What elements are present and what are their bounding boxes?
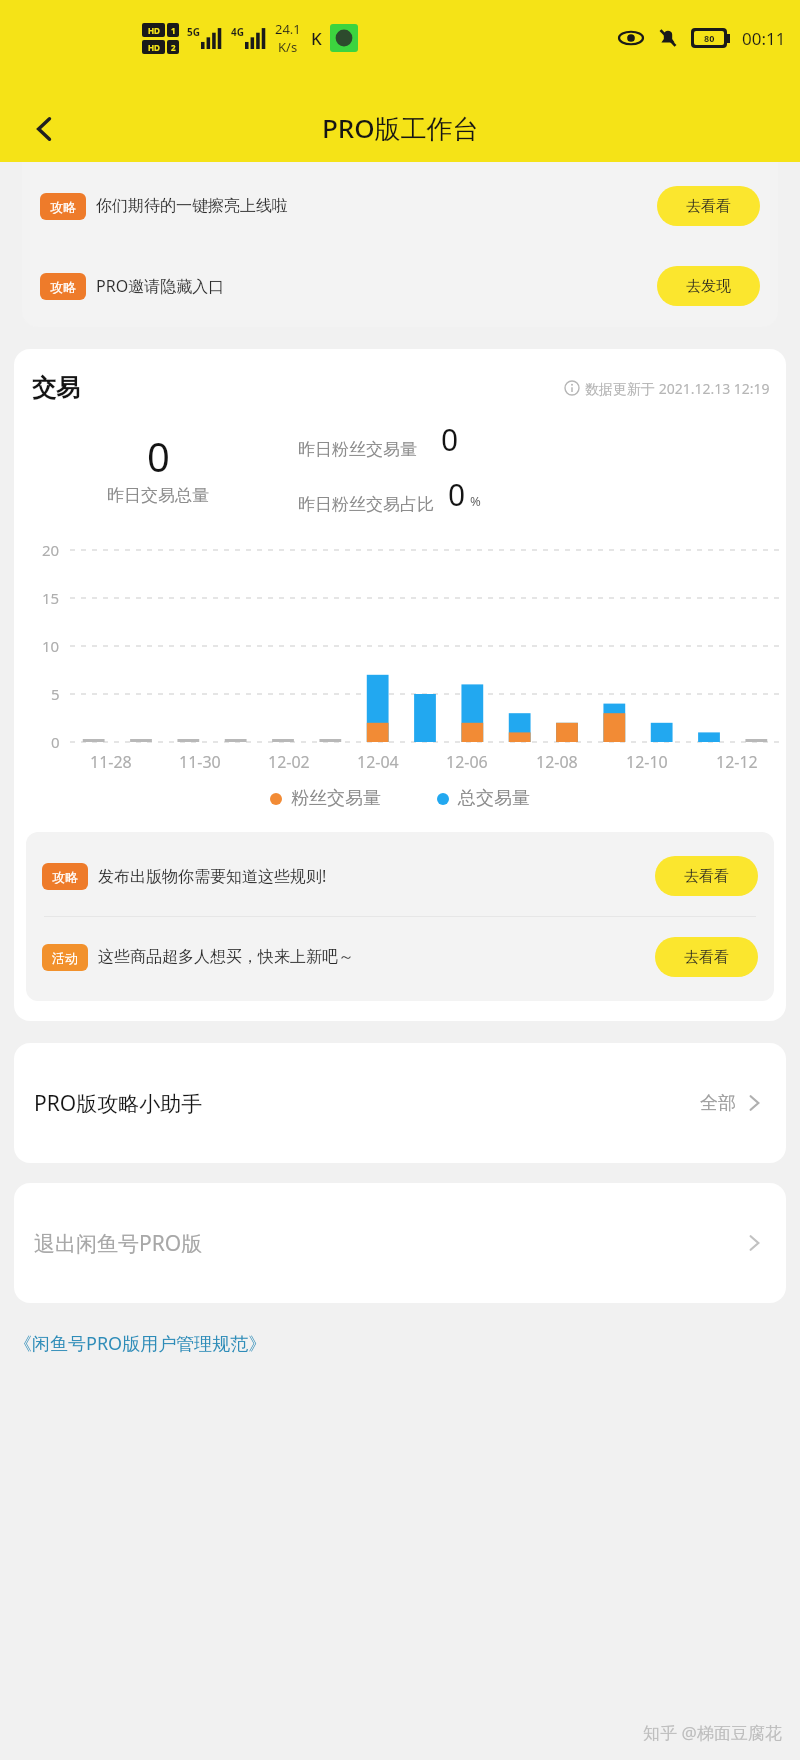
staticText: 11-30 (179, 751, 221, 773)
staticText: 去发现 (686, 277, 731, 296)
staticText: 12-12 (716, 751, 758, 773)
staticText: 12-02 (268, 751, 310, 773)
button[interactable]: 去看看 (655, 937, 758, 977)
button[interactable]: Back (16, 100, 74, 158)
staticText: % (470, 492, 481, 510)
staticText: 24.1 (275, 20, 301, 38)
staticText: 12-08 (536, 751, 578, 773)
button[interactable]: 去看看 (655, 856, 758, 896)
staticText: 去看看 (684, 867, 729, 886)
button[interactable]: 活动 (28, 917, 772, 997)
staticText: 昨日粉丝交易占比 (298, 494, 434, 515)
staticText: 12-06 (446, 751, 488, 773)
button[interactable]: PRO版攻略小助手 (14, 1043, 786, 1163)
other: Eye protection (619, 26, 643, 50)
staticText: 你们期待的一键擦亮上线啦 (96, 196, 657, 216)
staticText: 5 (51, 684, 60, 704)
staticText: 去看看 (686, 197, 731, 216)
staticText: 12-04 (357, 751, 399, 773)
staticText: 5G (187, 25, 200, 39)
staticText: 15 (42, 588, 60, 608)
staticText: 2 (171, 42, 176, 53)
staticText: PRO版工作台 (322, 110, 479, 146)
staticText: 活动 (52, 950, 78, 966)
button[interactable]: 攻略 (26, 166, 774, 246)
staticText: 昨日粉丝交易量 (298, 439, 417, 460)
staticText: 4G (231, 25, 244, 39)
button[interactable]: 攻略 (26, 246, 774, 326)
staticText: HD (148, 42, 160, 53)
staticText: 11-28 (90, 751, 132, 773)
staticText: 知乎 @梯面豆腐花 (643, 1721, 782, 1744)
button[interactable]: 去看看 (657, 186, 760, 226)
staticText: 全部 (700, 1092, 736, 1115)
staticText: 0 (441, 419, 459, 460)
staticText: HD (148, 25, 160, 36)
staticText: 粉丝交易量 (291, 787, 381, 810)
staticText: 攻略 (52, 869, 78, 885)
staticText: 00:11 (742, 27, 786, 50)
staticText: 0 (147, 429, 170, 483)
staticText: 12-10 (626, 751, 668, 773)
button[interactable]: 《闲鱼号PRO版用户管理规范》 (14, 1331, 267, 1356)
staticText: 攻略 (50, 199, 76, 215)
button[interactable]: 退出闲鱼号PRO版 (14, 1183, 786, 1303)
button[interactable]: 攻略 (28, 836, 772, 916)
staticText: 昨日交易总量 (107, 485, 209, 506)
staticText: 80 (704, 32, 715, 44)
staticText: PRO邀请隐藏入口 (96, 275, 657, 297)
staticText: 去看看 (684, 948, 729, 967)
staticText: 这些商品超多人想买，快来上新吧～ (98, 947, 655, 967)
staticText: 发布出版物你需要知道这些规则! (98, 865, 655, 887)
staticText: 退出闲鱼号PRO版 (34, 1229, 203, 1258)
other: Silent (657, 27, 679, 49)
staticText: K (311, 27, 322, 50)
staticText: PRO版攻略小助手 (34, 1089, 203, 1118)
staticText: 交易 (32, 373, 80, 403)
staticText: 攻略 (50, 279, 76, 295)
staticText: 0 (51, 732, 60, 752)
button[interactable]: 去发现 (657, 266, 760, 306)
staticText: 1 (171, 25, 176, 36)
staticText: 总交易量 (458, 787, 530, 810)
staticText: 数据更新于 2021.12.13 12:19 (585, 379, 770, 398)
staticText: 10 (42, 636, 60, 656)
staticText: 0 (448, 474, 466, 515)
staticText: K/s (278, 38, 298, 56)
staticText: 20 (42, 540, 60, 560)
